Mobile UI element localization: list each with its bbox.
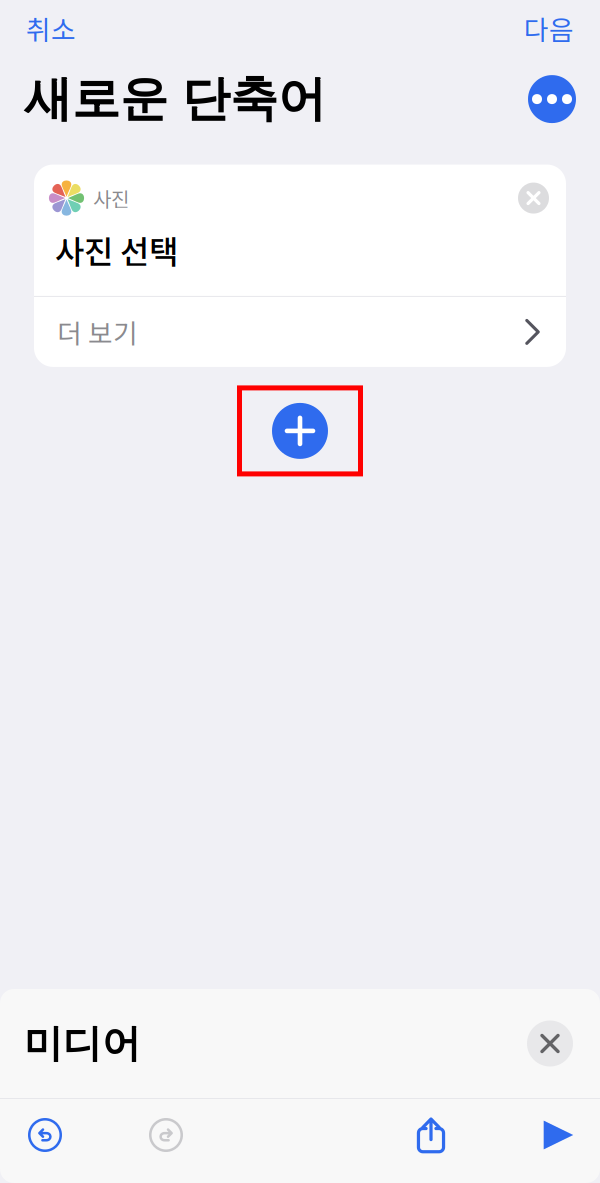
staticText: 새로운 단축어 xyxy=(24,70,326,129)
staticText: 사진 xyxy=(93,184,129,213)
button[interactable]: Close media picker xyxy=(527,1020,573,1066)
button[interactable]: 취소 xyxy=(26,9,76,48)
staticText: 다음 xyxy=(524,9,574,48)
staticText: 미디어 xyxy=(24,1020,141,1067)
button[interactable]: Share xyxy=(348,1101,514,1169)
staticText: 더 보기 xyxy=(57,313,138,351)
button[interactable]: 더 보기 xyxy=(34,297,566,367)
button[interactable]: Add action xyxy=(239,388,360,474)
staticText: 사진 선택 xyxy=(55,227,178,273)
button[interactable]: Run shortcut xyxy=(514,1101,600,1169)
button[interactable]: Redo xyxy=(90,1101,242,1169)
button[interactable]: More options xyxy=(528,75,576,123)
button[interactable]: Remove action xyxy=(518,183,549,214)
staticText: 취소 xyxy=(26,9,76,48)
button[interactable]: 다음 xyxy=(524,9,574,48)
button[interactable]: Undo xyxy=(0,1101,90,1169)
